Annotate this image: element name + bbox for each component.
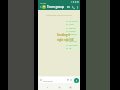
staticText: ok got it [69, 20, 78, 23]
button[interactable]: alright [65, 30, 80, 33]
staticText: 10:24 [40, 1, 47, 4]
button[interactable]: Recent apps [68, 85, 73, 90]
button[interactable]: Messages are end-to-end encrypted. Tap t… [42, 14, 76, 17]
staticText: Team group [47, 5, 65, 9]
staticText: Message [43, 79, 53, 82]
button[interactable]: ok [65, 47, 80, 50]
staticText: right now ok [57, 38, 74, 42]
staticText: alright [69, 30, 76, 33]
button[interactable]: More options [76, 4, 79, 10]
button[interactable]: Send voice message [74, 78, 79, 83]
button[interactable]: Profile photo [42, 5, 46, 9]
button[interactable]: ok got it [65, 20, 80, 23]
button[interactable]: Voice call [71, 4, 76, 10]
button[interactable]: got it [65, 37, 80, 40]
button[interactable]: sure thing [65, 23, 80, 26]
button[interactable]: thanks! [65, 33, 80, 36]
button[interactable]: Back [39, 4, 42, 10]
button[interactable]: bye now [65, 44, 80, 47]
staticText: will do [69, 27, 76, 30]
staticText: see you [69, 40, 77, 43]
button[interactable]: will do [65, 27, 80, 30]
staticText: thanks! [69, 33, 77, 36]
staticText: got it [69, 37, 75, 40]
button[interactable]: Message [39, 77, 73, 83]
staticText: ok [69, 47, 72, 50]
button[interactable]: Video call [66, 4, 71, 10]
staticText: Sending it [57, 33, 70, 37]
staticText: sure thing [69, 23, 79, 26]
staticText: bye now [69, 44, 78, 47]
button[interactable]: see you [65, 40, 80, 43]
staticText: Messages are end-to-end encrypted. Tap t… [42, 14, 76, 17]
button[interactable]: Back [45, 85, 50, 90]
button[interactable]: Home [57, 85, 62, 90]
